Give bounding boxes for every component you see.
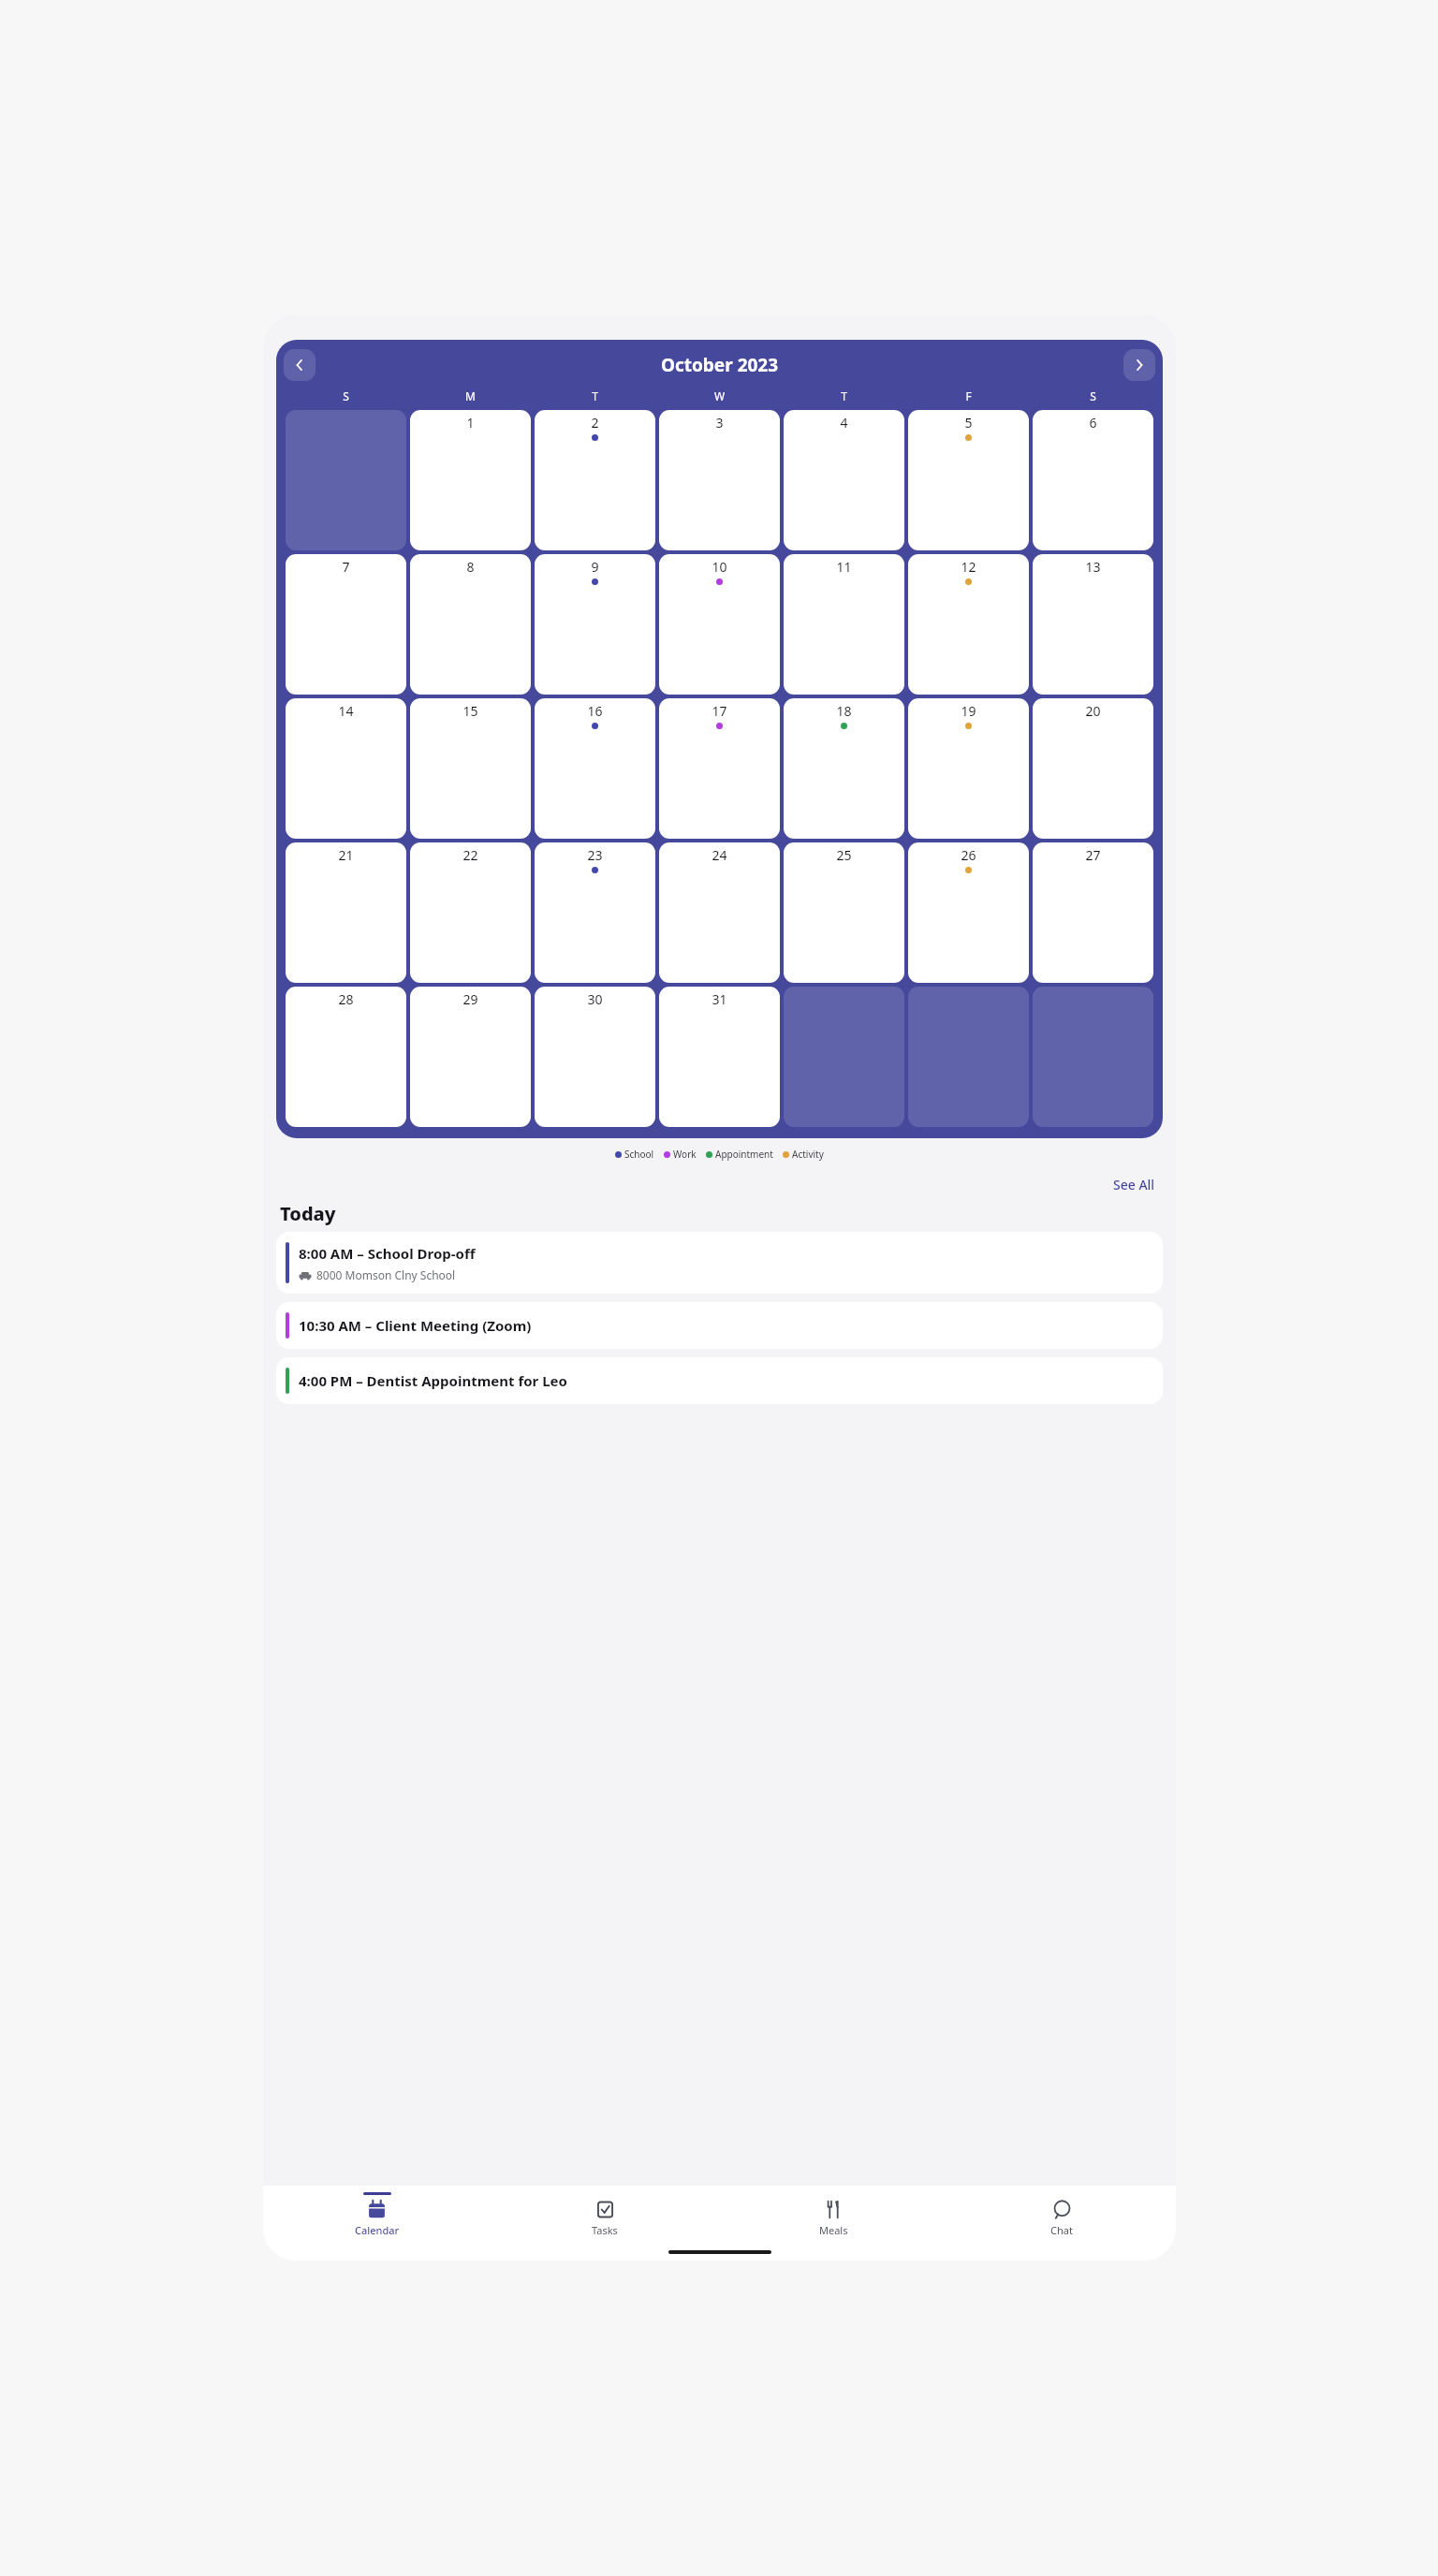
button[interactable]: 14	[286, 698, 406, 839]
staticText: October 2023	[315, 353, 1123, 377]
staticText: 30	[587, 990, 603, 1008]
staticText: 3	[715, 414, 724, 432]
button[interactable]: 12	[908, 554, 1029, 695]
button[interactable]: 21	[286, 842, 406, 983]
button[interactable]: 6	[1033, 410, 1153, 550]
staticText: 8	[466, 558, 475, 576]
button[interactable]: 11	[784, 554, 904, 695]
staticText: 28	[338, 990, 354, 1008]
staticText: 31	[712, 990, 727, 1008]
staticText: 16	[587, 702, 603, 720]
staticText: 18	[836, 702, 852, 720]
staticText: 13	[1085, 558, 1101, 576]
staticText: 19	[961, 702, 976, 720]
staticText: 21	[338, 846, 354, 864]
staticText: 5	[964, 414, 973, 432]
staticText: Meals	[819, 2223, 848, 2237]
staticText: 10:30 AM – Client Meeting (Zoom)	[299, 1316, 532, 1335]
button[interactable]: 30	[535, 987, 655, 1127]
staticText: T	[533, 388, 657, 403]
button[interactable]: 27	[1033, 842, 1153, 983]
button[interactable]: 7	[286, 554, 406, 695]
button[interactable]: 13	[1033, 554, 1153, 695]
staticText: 15	[462, 702, 478, 720]
staticText: T	[782, 388, 906, 403]
staticText: 20	[1085, 702, 1101, 720]
button[interactable]: 15	[410, 698, 531, 839]
staticText: Tasks	[592, 2223, 618, 2237]
staticText: 4	[840, 414, 848, 432]
button[interactable]: 20	[1033, 698, 1153, 839]
button[interactable]: 1	[410, 410, 531, 550]
button[interactable]: 3	[659, 410, 780, 550]
staticText: 22	[462, 846, 478, 864]
button[interactable]: Chat	[947, 2186, 1176, 2244]
staticText: 7	[342, 558, 350, 576]
button[interactable]: 4	[784, 410, 904, 550]
staticText: School	[624, 1148, 654, 1161]
button[interactable]: 28	[286, 987, 406, 1127]
button[interactable]: Tasks	[491, 2186, 719, 2244]
staticText: 11	[836, 558, 852, 576]
staticText: 9	[591, 558, 599, 576]
staticText: F	[906, 388, 1031, 403]
staticText: Calendar	[355, 2223, 400, 2237]
button[interactable]: 31	[659, 987, 780, 1127]
button[interactable]: 10:30 AM – Client Meeting (Zoom)	[276, 1302, 1163, 1349]
button[interactable]: 24	[659, 842, 780, 983]
button[interactable]: Meals	[719, 2186, 947, 2244]
button[interactable]: 29	[410, 987, 531, 1127]
button[interactable]: Next month	[1123, 349, 1155, 381]
button[interactable]: 22	[410, 842, 531, 983]
staticText: Work	[673, 1148, 697, 1161]
button[interactable]: 2	[535, 410, 655, 550]
button[interactable]: See All	[1109, 1174, 1159, 1195]
staticText: 4:00 PM – Dentist Appointment for Leo	[299, 1371, 567, 1390]
staticText: 8:00 AM – School Drop-off	[299, 1244, 476, 1263]
staticText: 10	[712, 558, 727, 576]
button[interactable]: 23	[535, 842, 655, 983]
staticText: 6	[1089, 414, 1097, 432]
staticText: 29	[462, 990, 478, 1008]
staticText: Activity	[792, 1148, 824, 1161]
button[interactable]: 18	[784, 698, 904, 839]
button[interactable]: 17	[659, 698, 780, 839]
button[interactable]: 19	[908, 698, 1029, 839]
button[interactable]: 8:00 AM – School Drop-off	[276, 1232, 1163, 1294]
staticText: 12	[961, 558, 976, 576]
staticText: Today	[280, 1201, 336, 1226]
button[interactable]: Calendar	[263, 2186, 491, 2244]
staticText: M	[408, 388, 533, 403]
staticText: 26	[961, 846, 976, 864]
button[interactable]: 25	[784, 842, 904, 983]
staticText: S	[284, 388, 408, 403]
staticText: 1	[466, 414, 475, 432]
staticText: 27	[1085, 846, 1101, 864]
button[interactable]: 16	[535, 698, 655, 839]
button[interactable]: 26	[908, 842, 1029, 983]
button[interactable]: 10	[659, 554, 780, 695]
button[interactable]: 8	[410, 554, 531, 695]
staticText: 2	[591, 414, 599, 432]
staticText: W	[657, 388, 782, 403]
staticText: 8000 Momson Clny School	[316, 1267, 456, 1282]
staticText: 24	[712, 846, 727, 864]
staticText: See All	[1113, 1176, 1155, 1193]
staticText: 23	[587, 846, 603, 864]
staticText: Appointment	[715, 1148, 773, 1161]
staticText: 25	[836, 846, 852, 864]
staticText: 17	[712, 702, 727, 720]
button[interactable]: Previous month	[284, 349, 315, 381]
staticText: Chat	[1050, 2223, 1073, 2237]
button[interactable]: 5	[908, 410, 1029, 550]
button[interactable]: 4:00 PM – Dentist Appointment for Leo	[276, 1357, 1163, 1404]
staticText: 14	[338, 702, 354, 720]
staticText: S	[1031, 388, 1155, 403]
button[interactable]: 9	[535, 554, 655, 695]
